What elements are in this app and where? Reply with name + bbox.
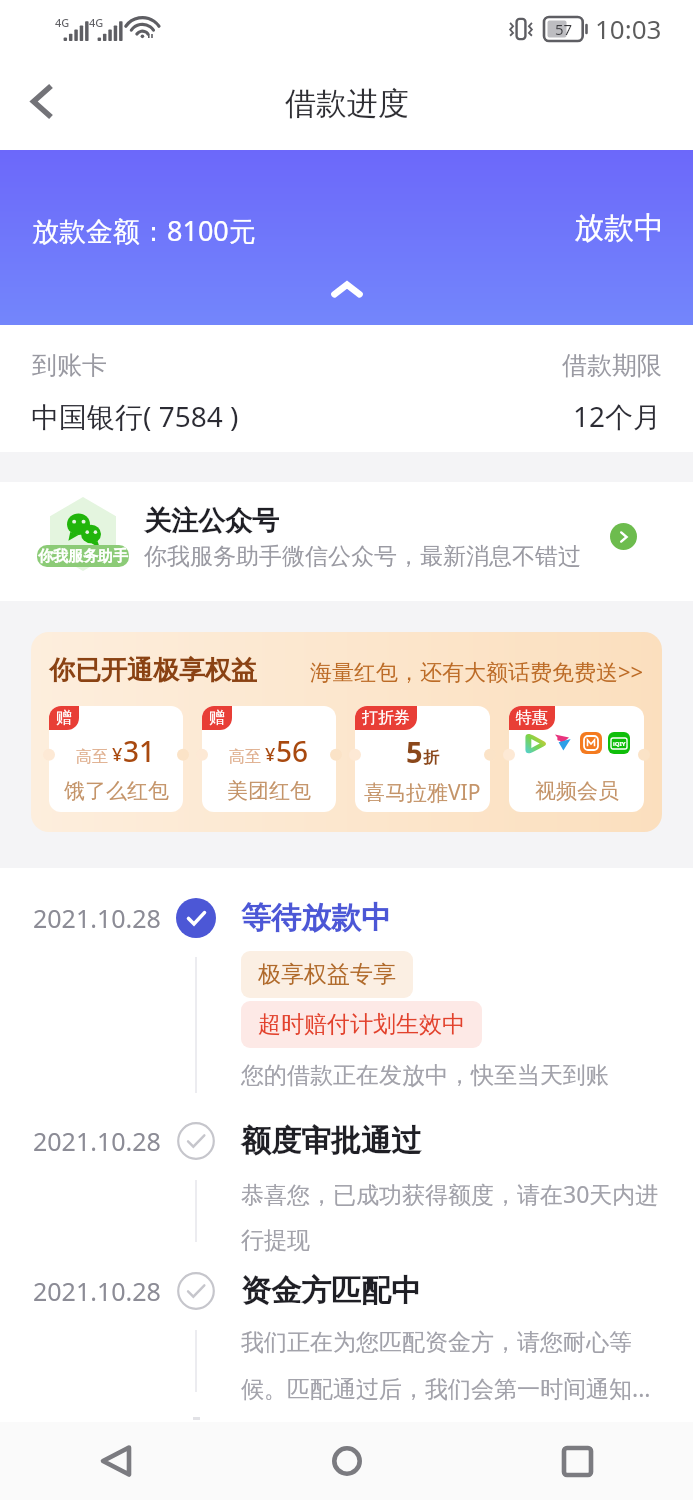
button[interactable] [202,706,336,812]
staticText: 2021.10.28 [33,1124,161,1158]
button[interactable]: 你我服务助手 [0,482,693,601]
staticText: 资金方匹配中 [241,1272,421,1310]
button[interactable] [509,706,644,812]
staticText: 4G [55,15,70,30]
staticText: 等待放款中 [241,899,391,937]
staticText: 海量红包，还有大额话费免费送>> [310,656,644,686]
staticText: 您的借款正在发放中，快至当天到账 [241,1061,609,1090]
staticText: 放款中 [574,209,664,247]
staticText: 饿了么红包 [64,778,169,804]
staticText: 极享权益专享 [258,960,396,989]
staticText: 超时赔付计划生效中 [258,1010,465,1039]
staticText: 4G [89,15,104,30]
staticText: 折 [423,748,439,768]
staticText: 赠 [56,708,72,728]
staticText: 美团红包 [227,778,311,804]
staticText: 喜马拉雅VIP [364,778,481,807]
button[interactable]: Back [0,1422,231,1500]
staticText: 31 [123,732,156,770]
staticText: 恭喜您，已成功获得额度，请在30天内进行提现 [241,1178,675,1254]
staticText: 高至 [229,747,261,767]
button[interactable] [355,706,490,812]
staticText: 打折券 [362,708,410,728]
staticText: 56 [276,732,309,770]
staticText: ¥ [112,742,123,767]
button[interactable]: Back [12,76,72,136]
staticText: 12个月 [573,397,662,435]
button[interactable]: 超时赔付计划生效中 [241,1001,482,1048]
staticText: 2021.10.28 [33,1274,161,1308]
staticText: 高至 [76,747,108,767]
staticText: 中国银行( 7584 ) [31,397,239,435]
staticText: 借款期限 [562,350,662,381]
staticText: 视频会员 [535,778,619,804]
staticText: 到账卡 [32,350,107,381]
button[interactable]: 极享权益专享 [241,951,413,998]
staticText: 我们正在为您匹配资金方，请您耐心等候。匹配通过后，我们会第一时间通知... [241,1328,675,1404]
staticText: 关注公众号 [144,504,279,538]
button[interactable]: Follow [610,523,637,550]
staticText: iQIY [613,740,626,748]
staticText: 特惠 [516,708,548,728]
staticText: 10:03 [595,11,662,46]
staticText: 借款进度 [285,84,409,123]
staticText: 放款金额：8100元 [32,212,256,249]
button[interactable] [49,706,183,812]
staticText: 57 [555,19,573,39]
staticText: ¥ [265,742,276,767]
button[interactable]: Home [231,1422,462,1500]
staticText: 额度审批通过 [241,1122,421,1160]
staticText: 你我服务助手 [38,547,128,566]
button[interactable]: 你已开通极享权益 [31,632,662,832]
staticText: 2021.10.28 [33,901,161,935]
staticText: 5 [406,732,423,771]
staticText: 你已开通极享权益 [49,654,257,687]
button[interactable]: Recent apps [462,1422,693,1500]
staticText: 赠 [209,708,225,728]
staticText: 你我服务助手微信公众号，最新消息不错过 [144,542,581,571]
button[interactable]: Collapse [320,262,374,316]
